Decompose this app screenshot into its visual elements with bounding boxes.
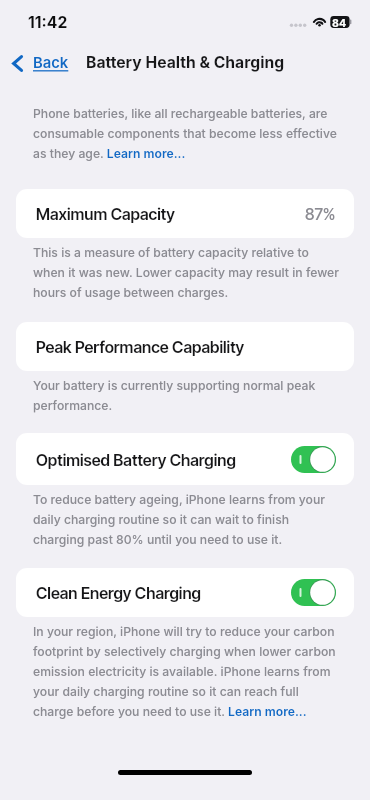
staticText: Back — [33, 54, 69, 72]
staticText: To reduce battery ageing, iPhone learns … — [33, 492, 340, 547]
staticText: Maximum Capacity — [36, 204, 175, 223]
staticText: This is a measure of battery capacity re… — [33, 245, 340, 300]
staticText: 87% — [305, 204, 336, 223]
button[interactable]: Clean Energy Charging — [16, 568, 354, 617]
staticText: 11:42 — [28, 13, 68, 32]
staticText: In your region, iPhone will try to reduc… — [33, 624, 340, 719]
staticText: Battery Health & Charging — [86, 53, 285, 72]
staticText: Peak Performance Capability — [36, 337, 245, 356]
button[interactable]: Toggle, on — [291, 579, 336, 606]
button[interactable]: Toggle, on — [291, 446, 336, 473]
button[interactable]: Maximum Capacity — [16, 189, 354, 238]
staticText: Your battery is currently supporting nor… — [33, 378, 340, 413]
staticText: Clean Energy Charging — [36, 583, 201, 602]
staticText: Phone batteries, like all rechargeable b… — [33, 106, 340, 161]
button[interactable]: Optimised Battery Charging — [16, 433, 354, 485]
staticText: Optimised Battery Charging — [36, 450, 236, 469]
staticText: 84 — [332, 17, 347, 30]
button[interactable]: Peak Performance Capability — [16, 322, 354, 371]
button[interactable]: Back — [7, 50, 75, 78]
